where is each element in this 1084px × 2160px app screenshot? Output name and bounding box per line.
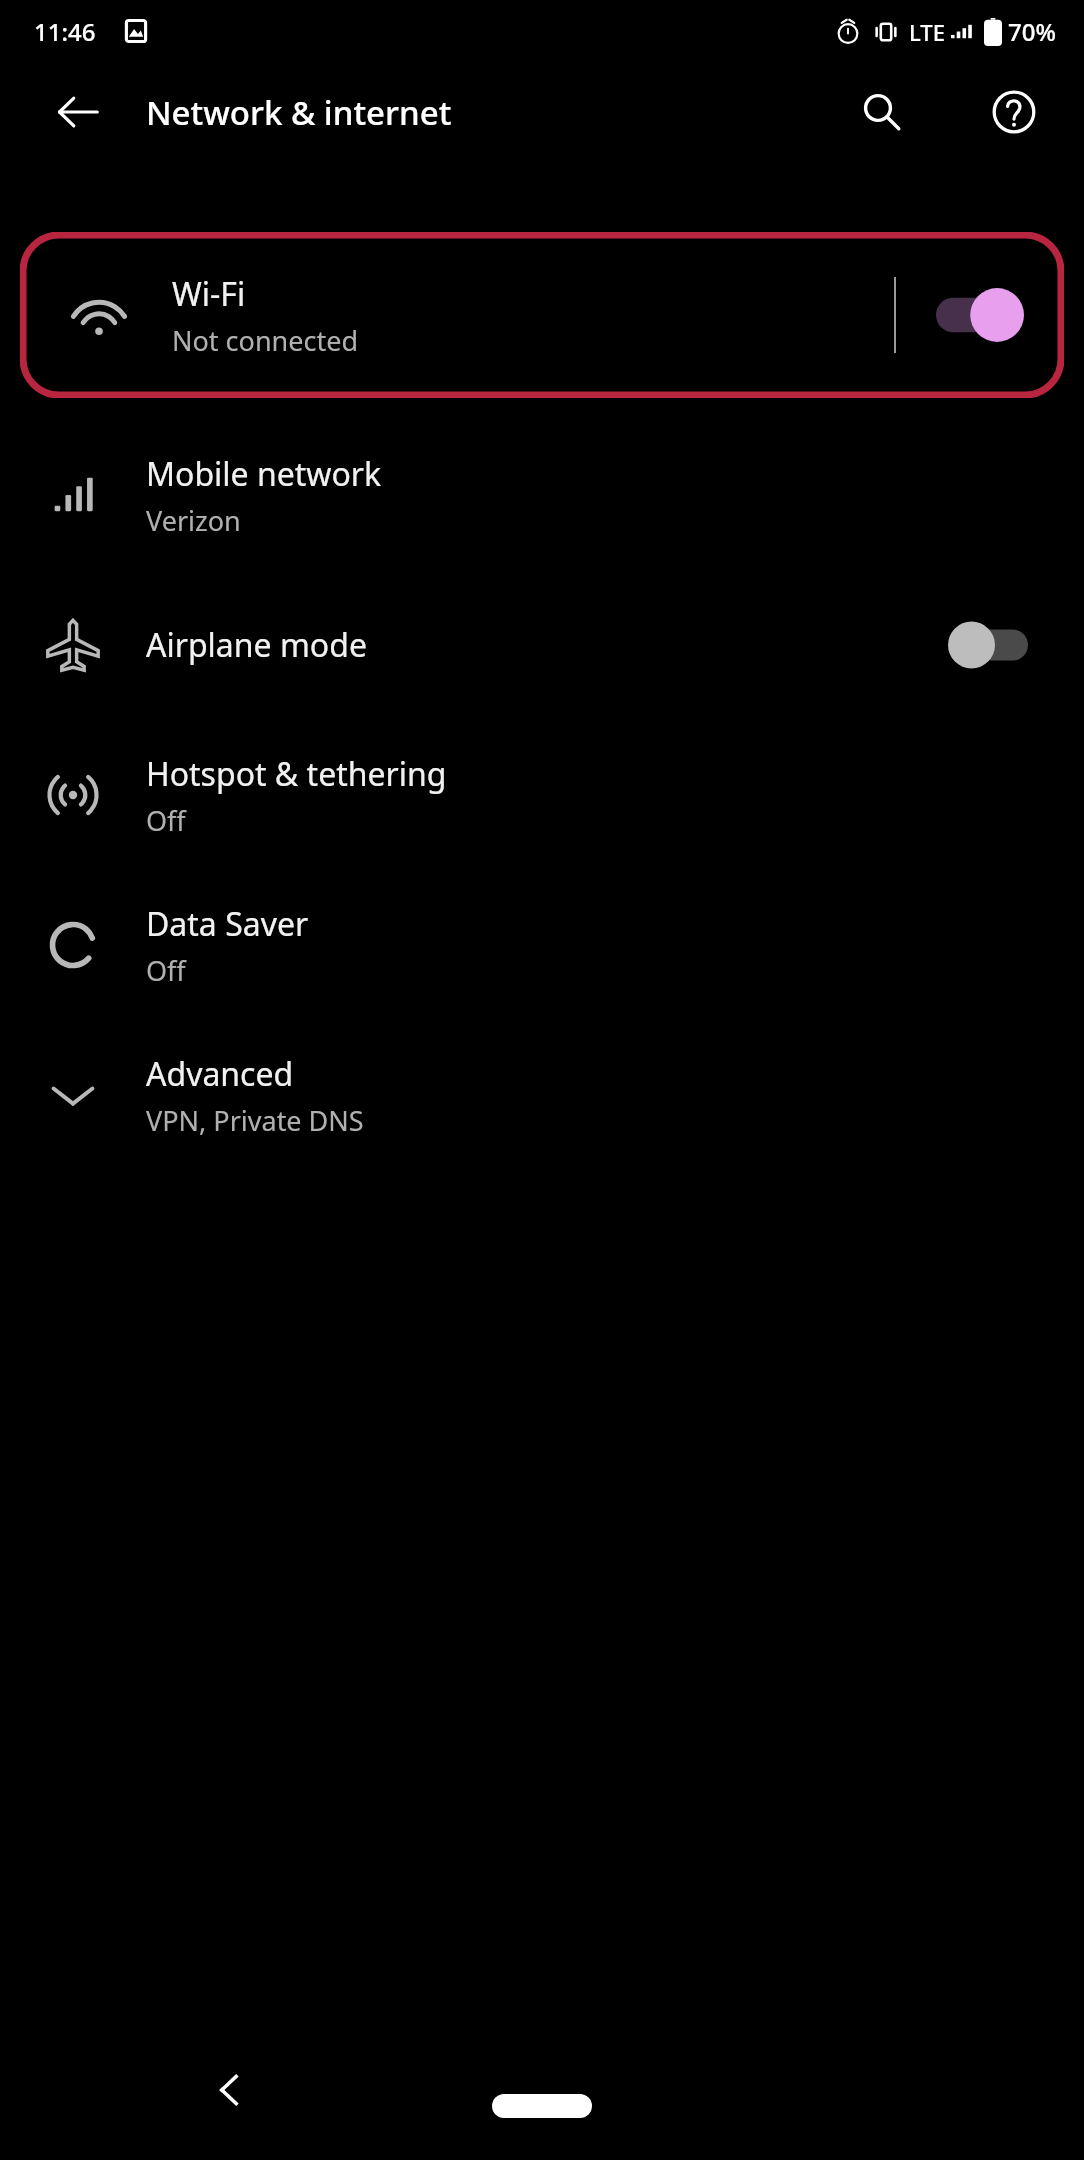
- button[interactable]: Mobile network: [0, 420, 1084, 570]
- staticText: Not connected: [172, 322, 359, 359]
- staticText: Verizon: [146, 502, 241, 539]
- staticText: Off: [146, 802, 186, 839]
- staticText: Network & internet: [146, 90, 452, 135]
- staticText: Off: [146, 952, 186, 989]
- staticText: LTE: [909, 17, 945, 47]
- button[interactable]: Advanced: [0, 1020, 1084, 1170]
- button[interactable]: Airplane mode: [0, 570, 1084, 720]
- button[interactable]: Wi-Fi: [20, 232, 1064, 398]
- staticText: Airplane mode: [146, 623, 367, 667]
- button[interactable]: Airplane mode toggle: [948, 620, 1028, 670]
- button[interactable]: Wi-Fi toggle: [896, 232, 1064, 398]
- button[interactable]: Hotspot & tethering: [0, 720, 1084, 870]
- button[interactable]: Data Saver: [0, 870, 1084, 1020]
- staticText: 70%: [1008, 15, 1056, 48]
- staticText: Wi-Fi: [172, 272, 246, 316]
- staticText: Data Saver: [146, 902, 309, 946]
- staticText: 11:46: [34, 15, 96, 48]
- button[interactable]: Help: [970, 68, 1058, 156]
- staticText: Mobile network: [146, 452, 382, 496]
- staticText: VPN, Private DNS: [146, 1102, 364, 1139]
- staticText: Hotspot & tethering: [146, 752, 447, 796]
- button[interactable]: Back: [30, 64, 126, 160]
- button[interactable]: Home: [492, 2094, 592, 2118]
- staticText: Advanced: [146, 1052, 294, 1096]
- button[interactable]: Search: [838, 68, 926, 156]
- button[interactable]: Back: [190, 2050, 270, 2130]
